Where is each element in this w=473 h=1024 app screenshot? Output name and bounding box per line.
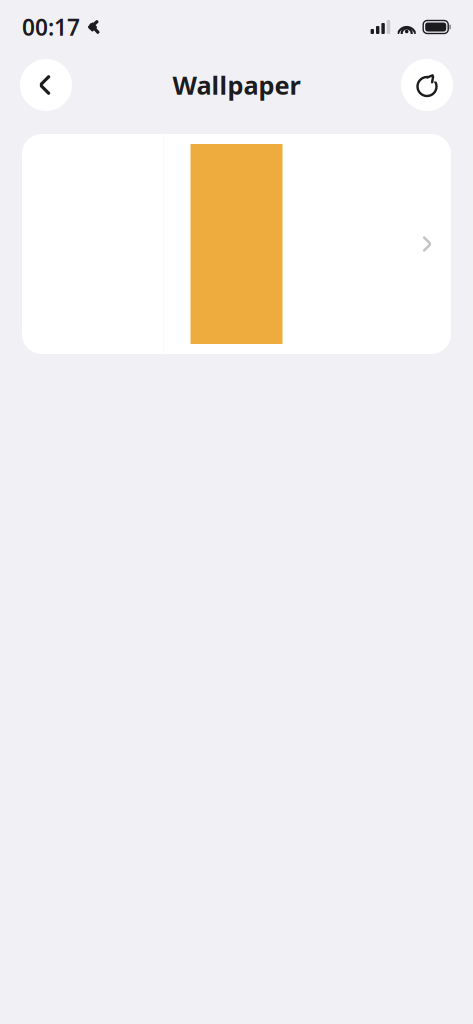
staticText: Wallpaper [172, 68, 300, 102]
button[interactable] [22, 134, 451, 354]
button[interactable]: Back [20, 59, 72, 111]
button[interactable]: Refresh [401, 59, 453, 111]
staticText: 00:17 [22, 12, 80, 42]
